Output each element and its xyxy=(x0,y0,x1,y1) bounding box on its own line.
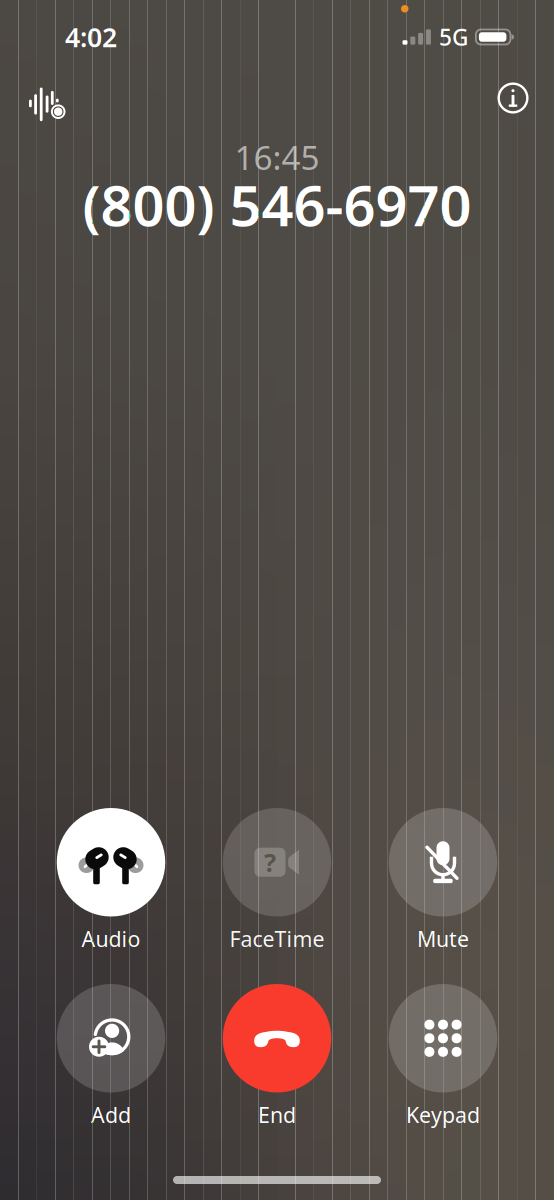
staticText: (800) 546-6970 xyxy=(82,167,471,242)
button[interactable]: End xyxy=(194,984,360,1131)
staticText: Mute xyxy=(417,924,469,953)
staticText: Audio xyxy=(81,924,140,953)
staticText: ? xyxy=(264,845,276,879)
button[interactable]: Call details xyxy=(493,67,533,107)
button[interactable]: Live Voicemail xyxy=(29,65,77,109)
button[interactable]: Add xyxy=(28,984,194,1131)
staticText: End xyxy=(258,1100,296,1129)
staticText: FaceTime xyxy=(229,924,324,953)
staticText: Keypad xyxy=(406,1100,480,1129)
staticText: 16:45 xyxy=(234,135,319,179)
button[interactable]: Mute xyxy=(360,808,526,955)
staticText: 4:02 xyxy=(65,19,117,55)
button[interactable]: Keypad xyxy=(360,984,526,1131)
staticText: Add xyxy=(91,1100,131,1129)
staticText: 5G xyxy=(439,22,468,52)
button[interactable]: Audio xyxy=(28,808,194,955)
button[interactable]: ? xyxy=(194,808,360,955)
